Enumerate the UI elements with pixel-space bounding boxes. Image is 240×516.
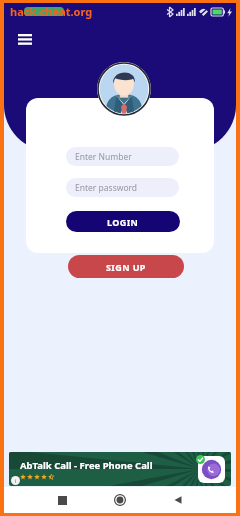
button[interactable]: LOGIN — [66, 211, 180, 232]
button[interactable]: Home — [108, 488, 132, 512]
button[interactable]: Enter password — [66, 178, 179, 197]
staticText: LOGIN — [107, 216, 139, 228]
staticText: AbTalk Call - Free Phone Call — [20, 459, 153, 472]
staticText: Enter password — [75, 182, 138, 194]
staticText: Enter Number — [75, 151, 132, 163]
staticText: SIGN UP — [106, 261, 146, 273]
button[interactable]: AbTalk Call - Free Phone Call — [9, 452, 231, 486]
staticText: i — [15, 477, 17, 485]
button[interactable]: Recent apps — [50, 488, 74, 512]
button[interactable]: Enter Number — [66, 147, 179, 166]
staticText: hack-cheat.org — [10, 4, 93, 19]
button[interactable]: Back — [166, 488, 190, 512]
button[interactable]: Menu — [14, 28, 36, 50]
button[interactable]: SIGN UP — [68, 255, 184, 278]
